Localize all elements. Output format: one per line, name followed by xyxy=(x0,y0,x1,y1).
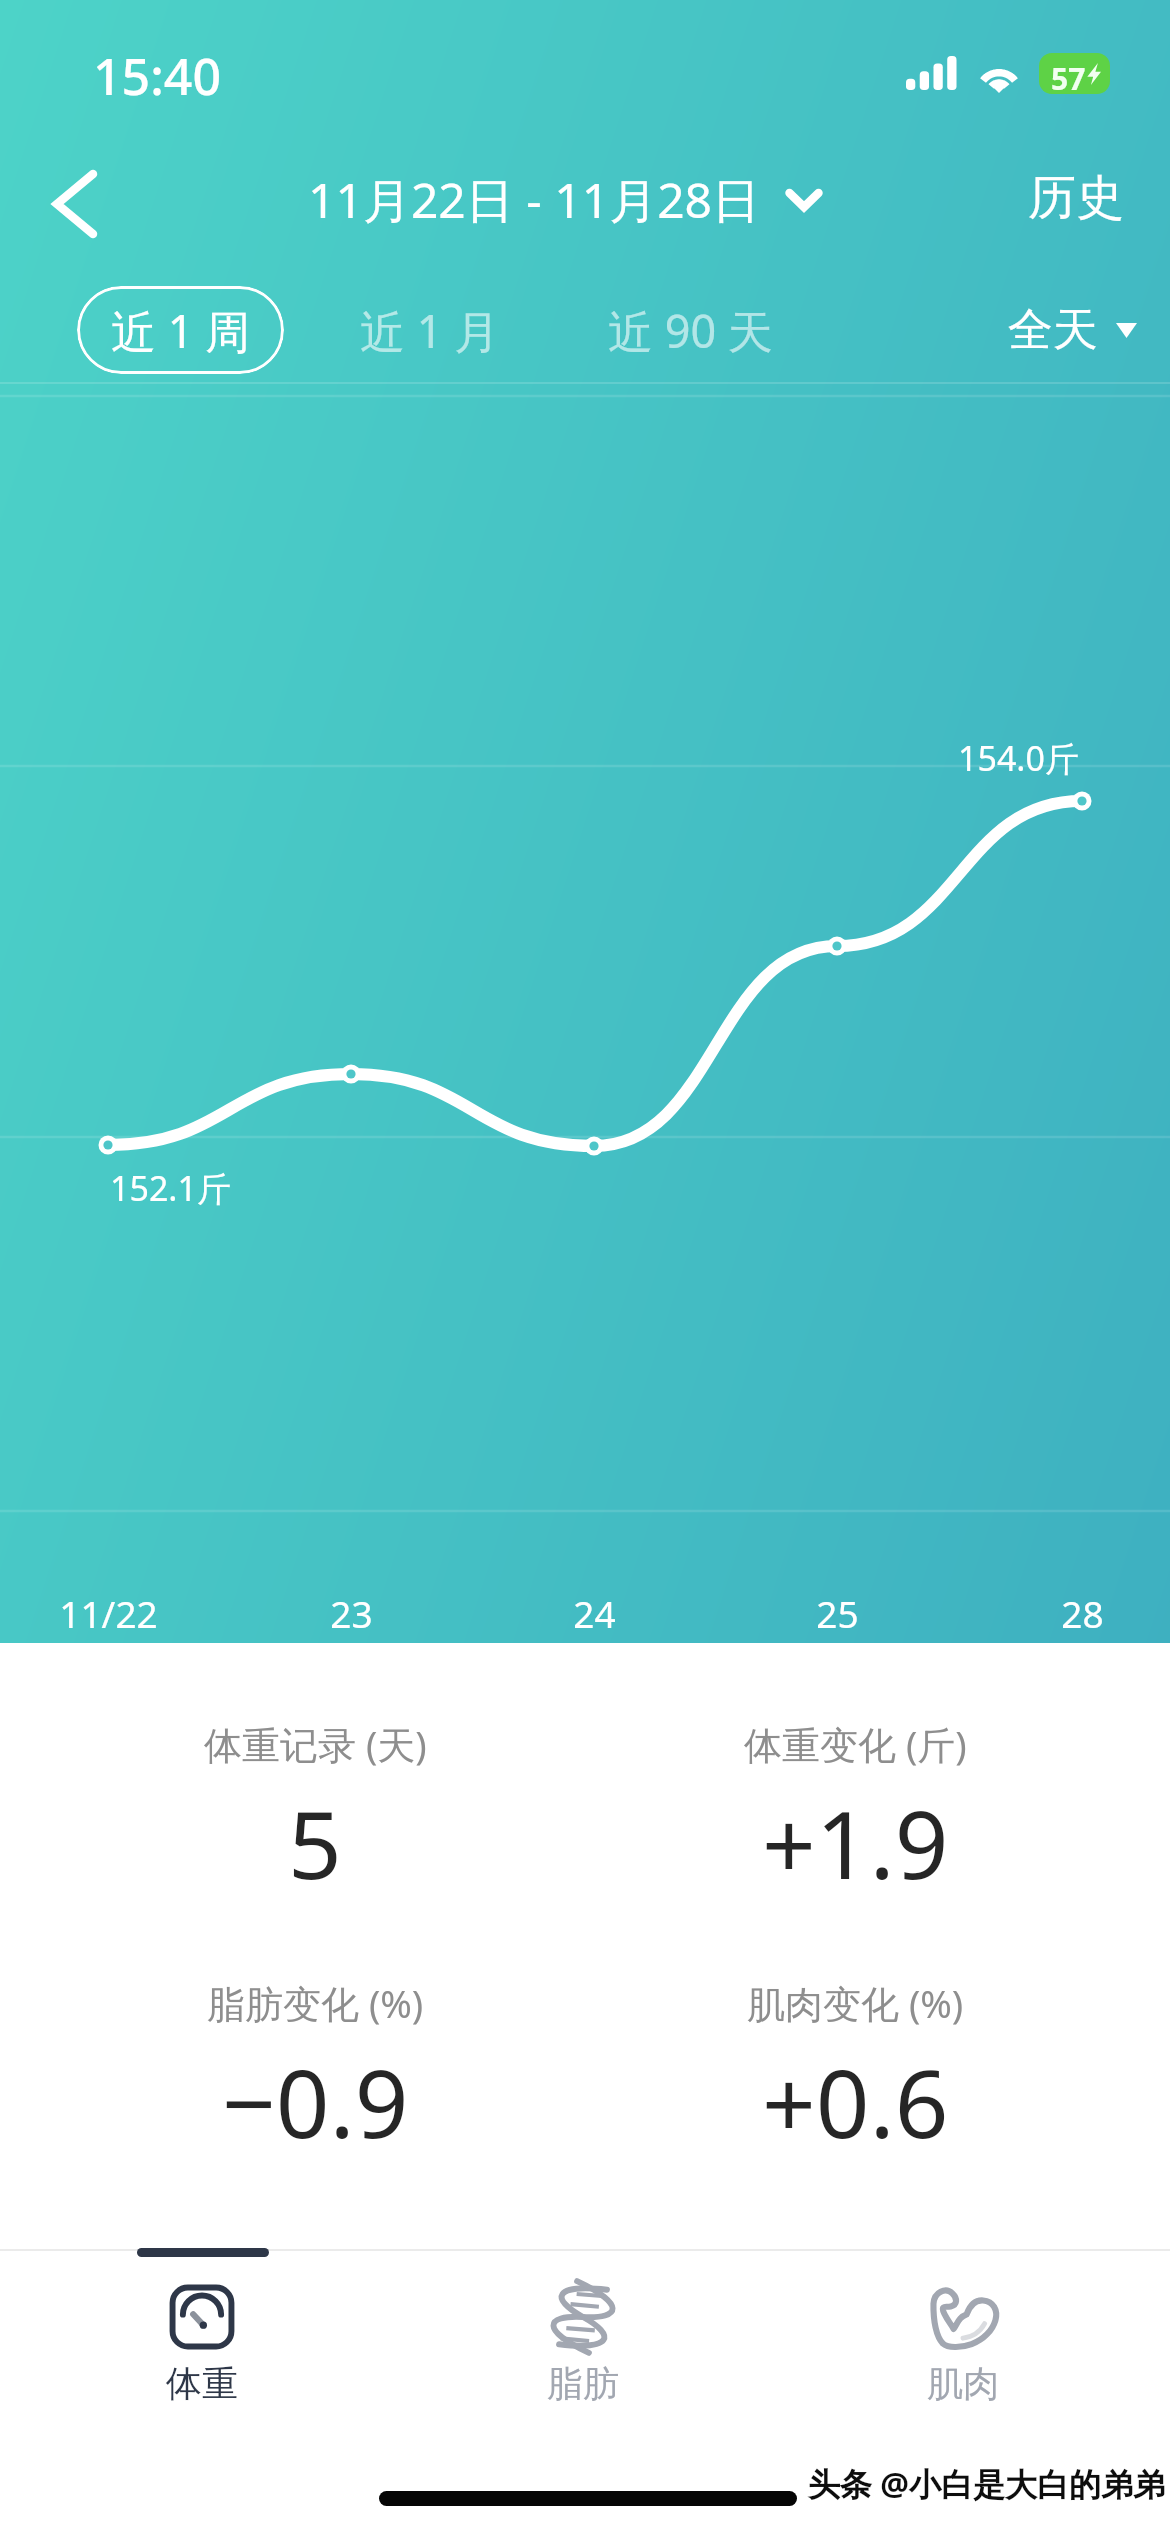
button[interactable]: 脂肪 xyxy=(453,2281,713,2406)
staticText: 11月22日 - 11月28日 xyxy=(308,167,761,233)
staticText: −0.9 xyxy=(222,2038,409,2166)
staticText: 24 xyxy=(573,1588,616,1638)
button[interactable]: 全天 xyxy=(978,286,1146,374)
staticText: 5 xyxy=(288,1779,342,1907)
staticText: 154.0斤 xyxy=(958,735,1079,781)
staticText: 近 1 周 xyxy=(111,300,251,361)
staticText: +0.6 xyxy=(762,2038,949,2166)
button[interactable]: 11月22日 - 11月28日 xyxy=(308,167,823,233)
button[interactable]: 脂肪变化 (%) xyxy=(45,1977,585,2166)
staticText: 152.1斤 xyxy=(110,1165,231,1211)
staticText: 肌肉变化 (%) xyxy=(747,1977,964,2029)
staticText: 脂肪变化 (%) xyxy=(207,1977,424,2029)
staticText: 体重 xyxy=(166,2361,238,2406)
staticText: 肌肉 xyxy=(927,2361,999,2406)
button[interactable]: Back xyxy=(20,149,130,259)
staticText: 28 xyxy=(1061,1588,1104,1638)
staticText: +1.9 xyxy=(762,1779,949,1907)
staticText: 近 1 月 xyxy=(360,300,500,361)
button[interactable]: 近 90 天 xyxy=(580,286,800,374)
button[interactable]: 体重记录 (天) xyxy=(45,1718,585,1907)
button[interactable]: 体重 xyxy=(72,2281,332,2406)
staticText: 脂肪 xyxy=(547,2361,619,2406)
button[interactable]: 肌肉 xyxy=(833,2281,1093,2406)
staticText: 23 xyxy=(330,1588,373,1638)
staticText: 体重记录 (天) xyxy=(204,1718,427,1770)
button[interactable]: 近 1 周 xyxy=(77,286,284,374)
staticText: 历史 xyxy=(1028,168,1124,228)
staticText: 体重变化 (斤) xyxy=(744,1718,967,1770)
staticText: 15:40 xyxy=(93,42,221,110)
button[interactable]: 体重变化 (斤) xyxy=(585,1718,1125,1907)
button[interactable]: 近 1 月 xyxy=(340,286,520,374)
staticText: 11/22 xyxy=(59,1588,158,1638)
staticText: 近 90 天 xyxy=(608,300,773,361)
staticText: 25 xyxy=(816,1588,859,1638)
button[interactable]: 历史 xyxy=(982,146,1170,262)
staticText: 57 xyxy=(1051,58,1086,94)
staticText: 头条 @小白是大白的弟弟 xyxy=(808,2462,1166,2506)
staticText: 全天 xyxy=(1008,302,1098,359)
button[interactable]: 肌肉变化 (%) xyxy=(585,1977,1125,2166)
